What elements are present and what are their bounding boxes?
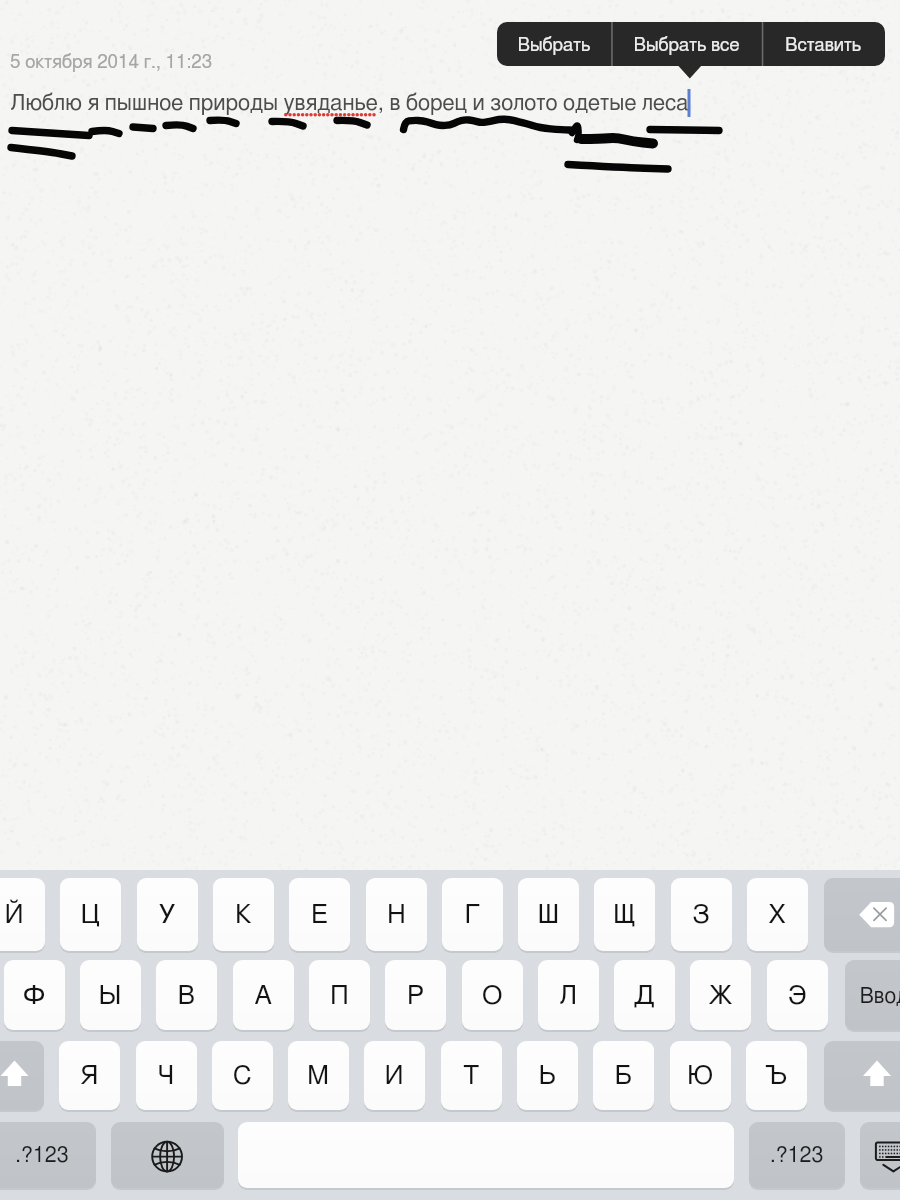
button[interactable] bbox=[59, 1041, 120, 1110]
button[interactable]: Shift bbox=[824, 1041, 900, 1110]
button[interactable] bbox=[611, 22, 762, 66]
button[interactable] bbox=[767, 960, 828, 1030]
button[interactable] bbox=[136, 1041, 197, 1110]
button[interactable] bbox=[614, 960, 675, 1030]
button[interactable] bbox=[137, 878, 198, 951]
button[interactable] bbox=[441, 1041, 502, 1110]
button[interactable] bbox=[594, 878, 655, 951]
button[interactable] bbox=[288, 1041, 349, 1110]
button[interactable] bbox=[762, 22, 885, 66]
button[interactable] bbox=[213, 878, 274, 951]
button[interactable]: Note body bbox=[0, 0, 900, 870]
button[interactable]: Shift bbox=[0, 1041, 44, 1110]
button[interactable] bbox=[749, 1122, 845, 1188]
button[interactable]: Change language bbox=[111, 1122, 224, 1188]
button[interactable] bbox=[538, 960, 599, 1030]
button[interactable] bbox=[309, 960, 370, 1030]
button[interactable] bbox=[289, 878, 350, 951]
button[interactable] bbox=[0, 878, 45, 951]
button[interactable] bbox=[517, 1041, 578, 1110]
button[interactable] bbox=[364, 1041, 425, 1110]
button[interactable]: Numbers bbox=[0, 1122, 96, 1188]
button[interactable] bbox=[60, 878, 121, 951]
button[interactable] bbox=[462, 960, 523, 1030]
button[interactable] bbox=[385, 960, 446, 1030]
button[interactable] bbox=[156, 960, 217, 1030]
button[interactable] bbox=[518, 878, 579, 951]
button[interactable] bbox=[497, 22, 611, 66]
button[interactable] bbox=[690, 960, 751, 1030]
button[interactable]: Hide keyboard bbox=[860, 1122, 900, 1188]
button[interactable] bbox=[4, 960, 65, 1030]
button[interactable]: Enter bbox=[845, 960, 900, 1030]
button[interactable] bbox=[671, 878, 732, 951]
button[interactable] bbox=[233, 960, 294, 1030]
button[interactable] bbox=[746, 1041, 807, 1110]
button[interactable]: Backspace bbox=[824, 878, 900, 951]
button[interactable] bbox=[442, 878, 503, 951]
button[interactable] bbox=[80, 960, 141, 1030]
button[interactable] bbox=[670, 1041, 731, 1110]
button[interactable] bbox=[366, 878, 427, 951]
button[interactable] bbox=[747, 878, 808, 951]
button[interactable] bbox=[212, 1041, 273, 1110]
button[interactable] bbox=[593, 1041, 654, 1110]
